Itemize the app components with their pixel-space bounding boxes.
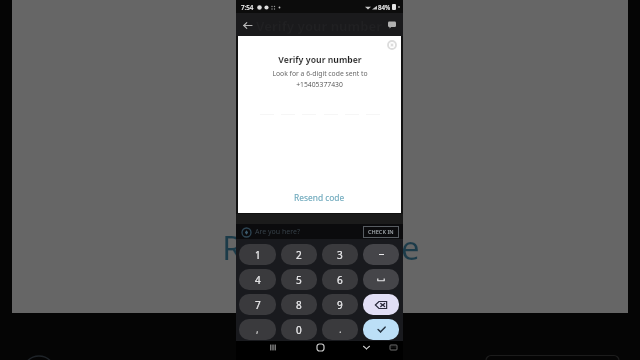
- button[interactable]: Space: [363, 269, 399, 290]
- button[interactable]: 9: [322, 294, 358, 315]
- staticText: 1: [255, 248, 261, 262]
- staticText: 4: [255, 273, 261, 287]
- staticText: .: [339, 322, 342, 336]
- button[interactable]: Dash: [363, 244, 399, 265]
- button[interactable]: Recent apps: [266, 341, 279, 354]
- button[interactable]: Close: [386, 39, 398, 51]
- staticText: +15405377430: [296, 80, 343, 89]
- staticText: Resend code: [294, 192, 345, 203]
- button[interactable]: 4: [239, 269, 276, 290]
- staticText: ,: [256, 322, 259, 336]
- button[interactable]: Home: [314, 341, 327, 354]
- button[interactable]: Switch keyboard: [387, 341, 400, 354]
- button[interactable]: 3: [322, 244, 358, 265]
- staticText: 9: [337, 298, 343, 312]
- button[interactable]: Back: [238, 16, 256, 34]
- staticText: 84%: [378, 3, 391, 11]
- staticText: CHECK IN: [368, 228, 394, 236]
- staticText: Are you here?: [255, 227, 300, 237]
- button[interactable]: Hide keyboard: [360, 341, 373, 354]
- button[interactable]: 2: [281, 244, 317, 265]
- staticText: Look for a 6-digit code sent to: [272, 69, 368, 78]
- button[interactable]: CHECK IN: [363, 226, 399, 238]
- staticText: 5: [296, 273, 302, 287]
- staticText: 7:54: [241, 3, 254, 11]
- staticText: 7: [255, 298, 261, 312]
- button[interactable]: 1: [239, 244, 276, 265]
- staticText: 6: [337, 273, 343, 287]
- staticText: 8: [296, 298, 302, 312]
- button[interactable]: 5: [281, 269, 317, 290]
- staticText: 0: [296, 323, 302, 337]
- staticText: Resend code: [222, 225, 420, 270]
- staticText: 2: [296, 248, 302, 262]
- button[interactable]: 6: [322, 269, 358, 290]
- staticText: 3: [337, 248, 343, 262]
- button[interactable]: Backspace: [363, 294, 399, 315]
- button[interactable]: Messages: [384, 17, 400, 33]
- button[interactable]: 0: [281, 319, 317, 340]
- button[interactable]: .: [322, 319, 358, 340]
- button[interactable]: 8: [281, 294, 317, 315]
- button[interactable]: Enter: [363, 319, 399, 340]
- staticText: Verify your number: [278, 54, 362, 66]
- button[interactable]: Resend code: [238, 189, 401, 205]
- button[interactable]: 7: [239, 294, 276, 315]
- button[interactable]: ,: [239, 319, 276, 340]
